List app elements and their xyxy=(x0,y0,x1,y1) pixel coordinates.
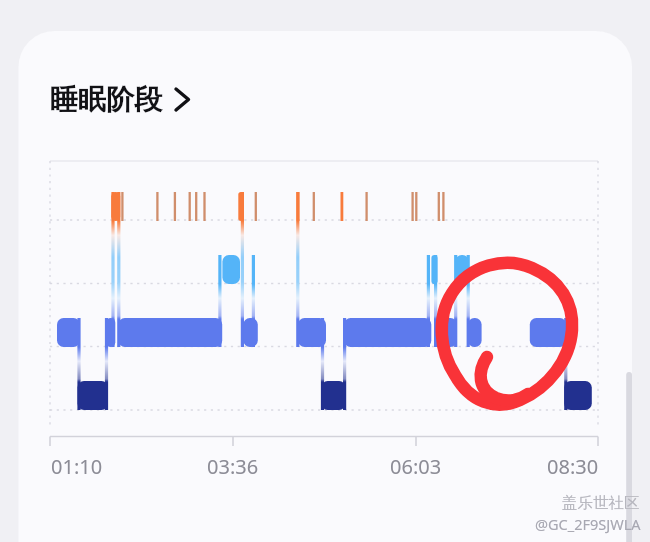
button[interactable] xyxy=(0,0,650,542)
